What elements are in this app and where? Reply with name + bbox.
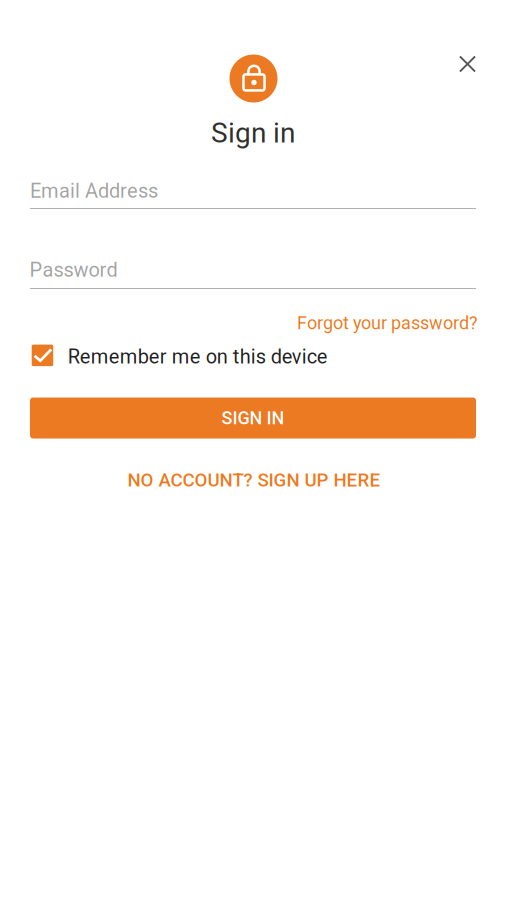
button[interactable]: Close — [445, 42, 489, 86]
staticText: NO ACCOUNT? SIGN UP HERE — [127, 469, 380, 491]
button[interactable]: SIGN IN — [30, 397, 476, 438]
button[interactable]: Email Address — [30, 172, 476, 209]
button[interactable]: NO ACCOUNT? SIGN UP HERE — [127, 465, 380, 495]
staticText: Sign in — [211, 117, 295, 149]
staticText: Forgot your password? — [297, 312, 478, 334]
button[interactable]: Forgot your password? — [297, 309, 478, 337]
staticText: Email Address — [30, 179, 158, 203]
staticText: SIGN IN — [221, 407, 284, 429]
button[interactable]: Password — [30, 252, 476, 289]
staticText: Remember me on this device — [68, 345, 328, 368]
staticText: Password — [29, 258, 117, 281]
button[interactable]: Remember me on this device — [32, 345, 328, 369]
